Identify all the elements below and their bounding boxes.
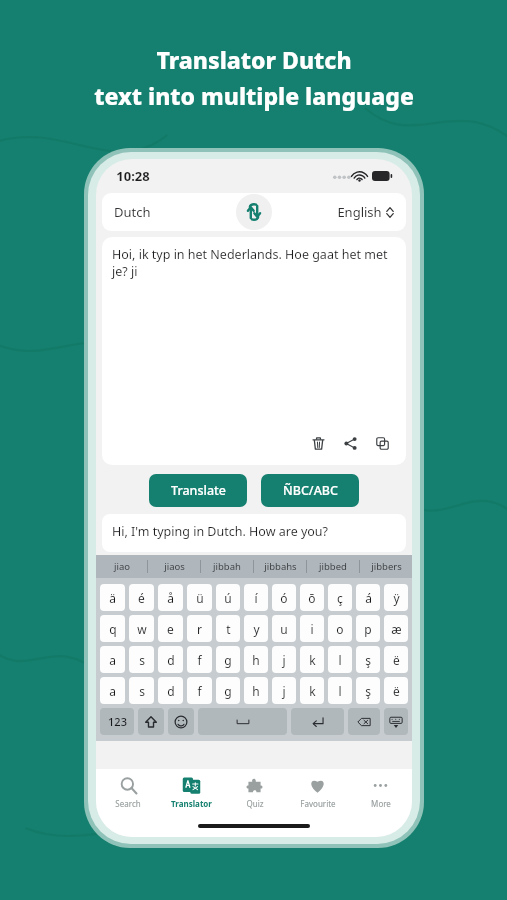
button[interactable]: Shift: [138, 708, 164, 735]
button[interactable]: Hoi, ik typ in het Nederlands. Hoe gaat …: [102, 237, 406, 465]
button[interactable]: i: [300, 615, 324, 642]
button[interactable]: h: [244, 646, 268, 673]
staticText: w: [137, 621, 147, 637]
staticText: f: [197, 683, 202, 699]
button[interactable]: Hi, I'm typing in Dutch. How are you?: [102, 514, 406, 552]
button[interactable]: jibbahs: [254, 555, 306, 578]
button[interactable]: q: [100, 615, 125, 642]
button[interactable]: jiaos: [148, 555, 200, 578]
button[interactable]: y: [244, 615, 268, 642]
button[interactable]: Emoji: [168, 708, 194, 735]
button[interactable]: e: [158, 615, 183, 642]
button[interactable]: p: [356, 615, 380, 642]
button[interactable]: g: [216, 646, 240, 673]
button[interactable]: f: [187, 646, 212, 673]
button[interactable]: í: [244, 584, 268, 611]
button[interactable]: 123: [100, 708, 134, 735]
button[interactable]: jibbah: [201, 555, 253, 578]
button[interactable]: Search: [96, 769, 160, 815]
button[interactable]: Delete: [306, 431, 330, 455]
button[interactable]: r: [187, 615, 212, 642]
staticText: Favourite: [300, 798, 336, 809]
button[interactable]: ä: [100, 584, 125, 611]
button[interactable]: English: [272, 193, 406, 231]
button[interactable]: á: [356, 584, 380, 611]
button[interactable]: ë: [384, 646, 408, 673]
staticText: s: [139, 683, 145, 699]
staticText: ç: [337, 590, 343, 606]
button[interactable]: Space: [198, 708, 287, 735]
button[interactable]: Hide keyboard: [384, 708, 408, 735]
button[interactable]: ş: [356, 677, 380, 704]
button[interactable]: u: [272, 615, 296, 642]
button[interactable]: Dutch: [102, 193, 236, 231]
staticText: Quiz: [246, 798, 264, 809]
button[interactable]: h: [244, 677, 268, 704]
button[interactable]: ÑBC/ABC: [261, 474, 359, 507]
staticText: s: [139, 652, 145, 668]
button[interactable]: Translator: [160, 769, 223, 815]
staticText: á: [365, 590, 372, 606]
button[interactable]: ÿ: [384, 584, 408, 611]
button[interactable]: Quiz: [223, 769, 286, 815]
staticText: 10:28: [116, 167, 150, 185]
button[interactable]: l: [328, 646, 352, 673]
button[interactable]: Copy: [370, 431, 394, 455]
button[interactable]: j: [272, 646, 296, 673]
staticText: y: [253, 621, 260, 637]
button[interactable]: t: [216, 615, 240, 642]
staticText: ş: [365, 652, 371, 668]
button[interactable]: d: [158, 677, 183, 704]
button[interactable]: é: [129, 584, 154, 611]
button[interactable]: ó: [272, 584, 296, 611]
button[interactable]: s: [129, 677, 154, 704]
button[interactable]: Translate: [149, 474, 247, 507]
button[interactable]: ş: [356, 646, 380, 673]
staticText: g: [224, 652, 232, 668]
staticText: l: [338, 683, 342, 699]
button[interactable]: w: [129, 615, 154, 642]
button[interactable]: jibbed: [307, 555, 359, 578]
button[interactable]: Favourite: [286, 769, 349, 815]
staticText: í: [254, 590, 258, 606]
button[interactable]: a: [100, 677, 125, 704]
button[interactable]: Share: [338, 431, 362, 455]
button[interactable]: Backspace: [348, 708, 380, 735]
button[interactable]: o: [328, 615, 352, 642]
button[interactable]: j: [272, 677, 296, 704]
staticText: Translator: [171, 798, 212, 809]
button[interactable]: k: [300, 677, 324, 704]
staticText: jibbah: [213, 560, 241, 573]
button[interactable]: ü: [187, 584, 212, 611]
button[interactable]: a: [100, 646, 125, 673]
button[interactable]: f: [187, 677, 212, 704]
button[interactable]: ú: [216, 584, 240, 611]
button[interactable]: g: [216, 677, 240, 704]
button[interactable]: Swap languages: [236, 194, 272, 230]
staticText: é: [138, 590, 145, 606]
staticText: l: [338, 652, 342, 668]
button[interactable]: æ: [384, 615, 408, 642]
button[interactable]: ç: [328, 584, 352, 611]
button[interactable]: More: [349, 769, 412, 815]
staticText: Translator Dutch: [156, 44, 352, 75]
staticText: Search: [115, 798, 141, 809]
button[interactable]: jibbers: [360, 555, 412, 578]
staticText: jiao: [114, 560, 130, 573]
button[interactable]: ō: [300, 584, 324, 611]
staticText: Hi, I'm typing in Dutch. How are you?: [112, 523, 329, 540]
staticText: q: [109, 621, 117, 637]
button[interactable]: d: [158, 646, 183, 673]
staticText: h: [252, 683, 260, 699]
staticText: k: [309, 683, 316, 699]
button[interactable]: s: [129, 646, 154, 673]
staticText: text into multiple language: [94, 80, 414, 111]
button[interactable]: Enter: [291, 708, 344, 735]
button[interactable]: l: [328, 677, 352, 704]
staticText: g: [224, 683, 232, 699]
button[interactable]: k: [300, 646, 324, 673]
button[interactable]: ë: [384, 677, 408, 704]
button[interactable]: å: [158, 584, 183, 611]
staticText: 123: [108, 714, 127, 729]
button[interactable]: jiao: [96, 555, 147, 578]
